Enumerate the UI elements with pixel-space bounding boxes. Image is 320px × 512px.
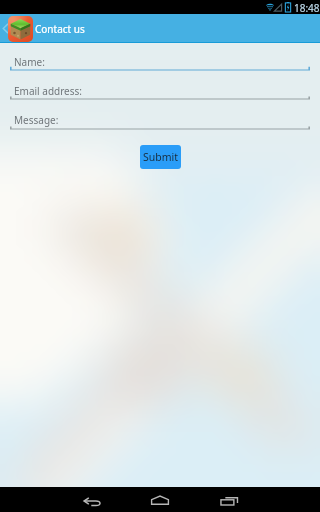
button[interactable]: Home — [136, 487, 184, 512]
button[interactable]: Submit — [140, 145, 181, 169]
button[interactable]: Recent apps — [205, 487, 253, 512]
staticText: Email address: — [14, 84, 83, 98]
staticText: 18:48 — [294, 1, 320, 15]
staticText: Submit — [143, 150, 179, 164]
button[interactable]: Navigate up — [0, 14, 34, 43]
staticText: Message: — [14, 113, 59, 127]
button[interactable]: Back — [68, 487, 116, 512]
staticText: Contact us — [35, 22, 85, 36]
staticText: Name: — [14, 55, 45, 69]
